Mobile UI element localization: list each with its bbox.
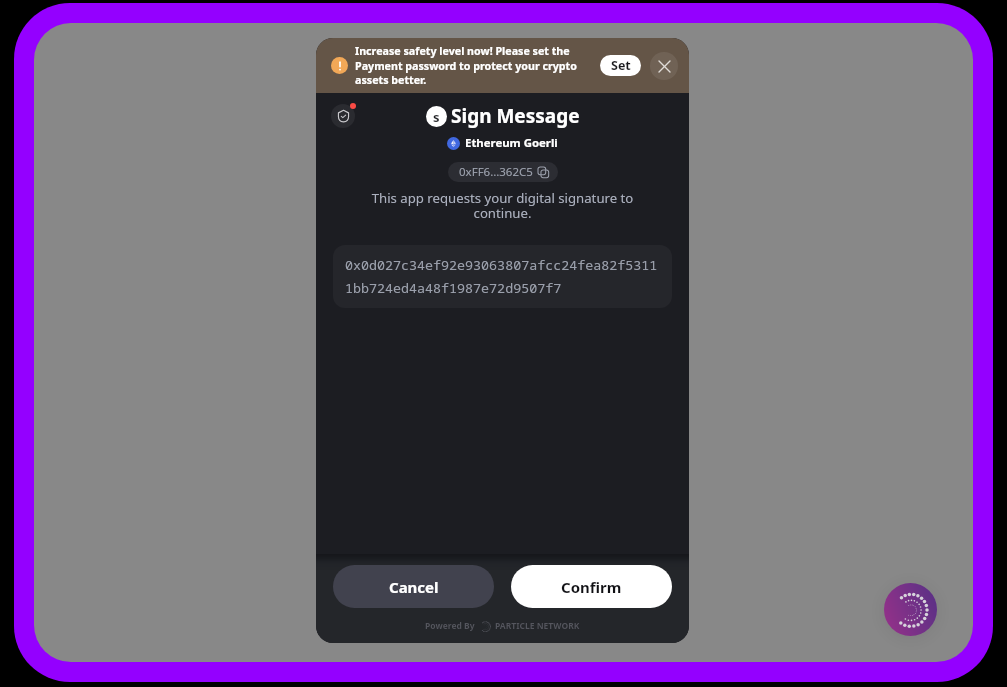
button[interactable]: Confirm bbox=[511, 565, 672, 608]
staticText: Confirm bbox=[561, 577, 622, 597]
button[interactable]: Particle Network bbox=[884, 583, 937, 636]
staticText: This app requests your digital signature… bbox=[357, 189, 648, 222]
button[interactable]: 0xFF6…362C5 bbox=[448, 162, 558, 182]
staticText: Ethereum Goerli bbox=[465, 135, 558, 151]
button[interactable]: Close bbox=[650, 52, 678, 80]
staticText: PARTICLE NETWORK bbox=[495, 620, 580, 632]
button[interactable]: Security settings bbox=[331, 104, 355, 128]
button[interactable]: Set bbox=[600, 55, 641, 76]
staticText: Cancel bbox=[389, 577, 439, 597]
staticText: Increase safety level now! Please set th… bbox=[355, 44, 592, 87]
staticText: Powered By bbox=[425, 620, 475, 632]
button[interactable]: Cancel bbox=[333, 565, 494, 608]
staticText: 0x0d027c34ef92e93063807afcc24fea82f53111… bbox=[345, 256, 660, 297]
staticText: s bbox=[433, 108, 440, 126]
staticText: Sign Message bbox=[451, 103, 580, 129]
staticText: 0xFF6…362C5 bbox=[459, 164, 533, 180]
staticText: Set bbox=[611, 57, 631, 74]
